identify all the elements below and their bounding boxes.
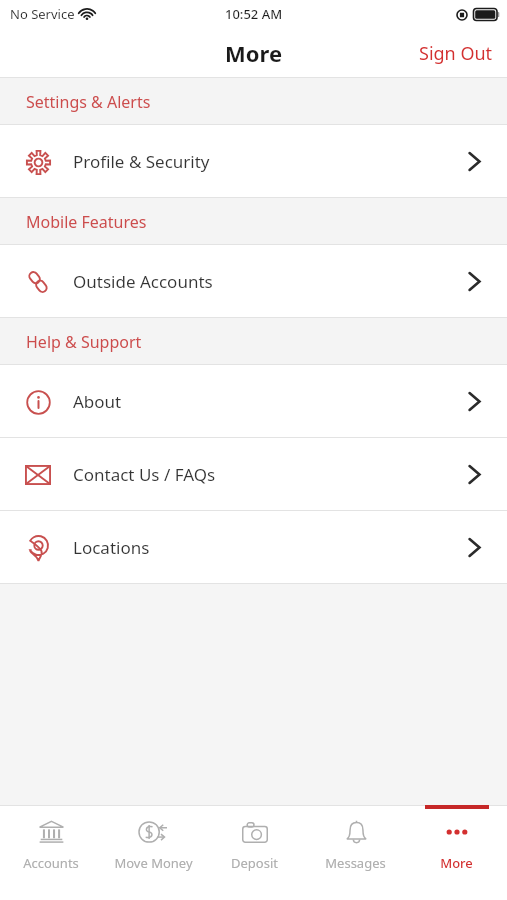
- staticText: Outside Accounts: [73, 270, 213, 293]
- button[interactable]: Profile & Security: [0, 125, 507, 198]
- staticText: Move Money: [114, 854, 193, 872]
- button[interactable]: About: [0, 365, 507, 438]
- staticText: 10:52 AM: [225, 5, 283, 23]
- staticText: Messages: [325, 854, 386, 872]
- other: More: [442, 822, 472, 842]
- button[interactable]: More: [406, 805, 507, 883]
- button[interactable]: Contact Us / FAQs: [0, 438, 507, 511]
- button[interactable]: Accounts: [0, 805, 102, 883]
- button[interactable]: Deposit: [204, 805, 305, 883]
- button[interactable]: Move Money: [102, 805, 204, 883]
- staticText: Mobile Features: [26, 211, 147, 233]
- staticText: Contact Us / FAQs: [73, 463, 216, 486]
- staticText: More: [225, 38, 283, 68]
- staticText: Accounts: [23, 854, 79, 872]
- staticText: Profile & Security: [73, 150, 210, 173]
- staticText: Settings & Alerts: [26, 91, 151, 113]
- staticText: More: [440, 854, 473, 872]
- staticText: No Service: [10, 5, 75, 23]
- staticText: Locations: [73, 536, 150, 559]
- button[interactable]: Locations: [0, 511, 507, 584]
- button[interactable]: Sign Out: [405, 33, 507, 74]
- staticText: Deposit: [231, 854, 278, 872]
- button[interactable]: Outside Accounts: [0, 245, 507, 318]
- staticText: Sign Out: [419, 41, 493, 66]
- button[interactable]: Messages: [305, 805, 406, 883]
- staticText: About: [73, 390, 122, 413]
- staticText: Help & Support: [26, 331, 142, 353]
